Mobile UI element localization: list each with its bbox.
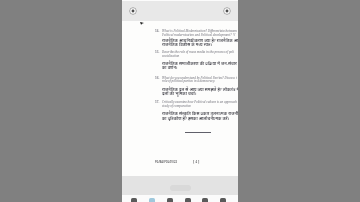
staticText: 16. <box>155 76 160 80</box>
staticText: राजनैतिक दल से आप क्या समझते हैं? लोकतंत… <box>162 87 238 92</box>
staticText: दलों की भूमिका चर्चा। <box>162 91 197 96</box>
button[interactable]: App shortcut 3 <box>167 198 173 202</box>
staticText: का दृष्टिकोण है? इसका आलोचनात्मक करें। <box>162 116 230 121</box>
staticText: राजनैतिक आधुनिकीकरण क्या है? राजनैतिक आध… <box>162 38 238 43</box>
staticText: राजनैतिक समाजीकरण की प्रक्रिया में जन-सं… <box>162 61 238 66</box>
staticText: What is Political Modernisation? Differe… <box>162 29 237 33</box>
button[interactable]: Profile <box>129 7 137 15</box>
staticText: Describe the role of mass media in the p… <box>162 50 235 54</box>
staticText: 14. <box>155 29 160 33</box>
button[interactable]: App shortcut 6 <box>220 198 226 202</box>
staticText: 15. <box>155 50 160 54</box>
staticText: राजनैतिक संस्कृति किस प्रकार तुलनात्मक र… <box>162 111 238 116</box>
staticText: Political modernisation and Political de… <box>162 33 236 37</box>
button[interactable]: More options <box>223 7 231 15</box>
staticText: PG/BA/POL/IV/22 <box>155 160 178 164</box>
staticText: का वर्णन। <box>162 65 178 70</box>
staticText: [ 4 ] <box>193 159 200 164</box>
button[interactable]: App shortcut 2 <box>149 198 155 202</box>
staticText: Critically examine how Political culture… <box>162 100 238 104</box>
staticText: 17. <box>155 100 160 104</box>
staticText: study of comparative <box>162 104 191 108</box>
button[interactable]: App shortcut 5 <box>202 198 208 202</box>
button[interactable]: App shortcut 1 <box>131 198 137 202</box>
button[interactable]: App shortcut 4 <box>185 198 191 202</box>
staticText: role of political parties in a democracy… <box>162 79 215 83</box>
staticText: socialisation <box>162 54 180 58</box>
staticText: What do you understand by Political Part… <box>162 76 237 80</box>
staticText: राजनैतिक विकास के मध्य स्पष्ट। <box>162 42 213 47</box>
